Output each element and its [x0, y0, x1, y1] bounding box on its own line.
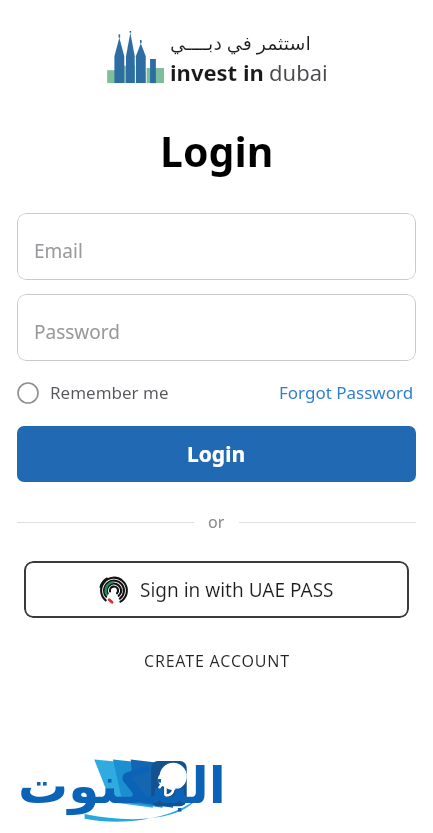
staticText: Login: [187, 440, 246, 469]
button[interactable]: Forgot Password: [277, 377, 416, 408]
other: UAE PASS fingerprint: [100, 576, 128, 604]
staticText: CREATE ACCOUNT: [144, 650, 290, 672]
staticText: Login: [160, 123, 274, 179]
staticText: dubai: [269, 57, 328, 87]
staticText: البنكنوت: [18, 757, 226, 815]
button[interactable]: Login: [17, 426, 416, 482]
staticText: Sign in with UAE PASS: [140, 577, 334, 603]
staticText: Forgot Password: [279, 381, 414, 404]
button[interactable]: Email: [17, 213, 416, 280]
button[interactable]: CREATE ACCOUNT: [136, 645, 298, 677]
button[interactable]: UAE PASS fingerprint: [24, 561, 409, 618]
button[interactable]: Password: [17, 294, 416, 361]
staticText: استثمر في دبــــي: [170, 30, 311, 56]
staticText: or: [208, 511, 225, 533]
staticText: Remember me: [50, 381, 169, 404]
button[interactable]: Remember me: [17, 377, 169, 408]
staticText: invest in: [170, 57, 264, 87]
staticText: Email: [34, 238, 83, 264]
staticText: Password: [34, 319, 120, 345]
